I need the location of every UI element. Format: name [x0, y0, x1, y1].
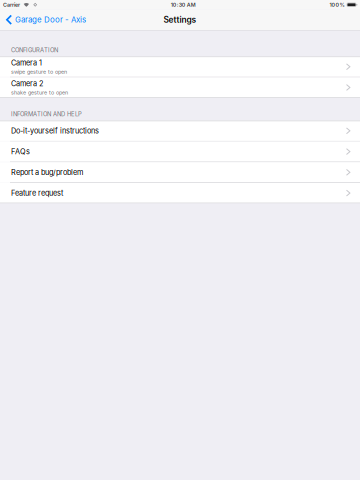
button[interactable]: Report a bug/problem: [0, 162, 360, 182]
button[interactable]: Feature request: [0, 183, 360, 203]
staticText: Report a bug/problem: [11, 168, 83, 177]
button[interactable]: FAQs: [0, 141, 360, 162]
staticText: Settings: [163, 15, 196, 25]
staticText: 100%: [329, 1, 344, 8]
staticText: swipe gesture to open: [11, 68, 67, 75]
staticText: Camera 2: [11, 79, 43, 88]
button[interactable]: Camera 2: [0, 77, 360, 97]
staticText: CONFIGURATION: [11, 46, 58, 54]
staticText: INFORMATION AND HELP: [11, 111, 82, 118]
staticText: Feature request: [11, 189, 63, 197]
staticText: shake gesture to open: [11, 89, 68, 96]
staticText: Camera 1: [11, 58, 42, 67]
button[interactable]: Garage Door - Axis: [0, 9, 91, 30]
staticText: FAQs: [11, 147, 30, 156]
button[interactable]: Camera 1: [0, 57, 360, 77]
staticText: 10:30 AM: [171, 1, 196, 8]
staticText: Garage Door - Axis: [15, 15, 86, 24]
button[interactable]: Do-it-yourself instructions: [0, 121, 360, 141]
staticText: Carrier: [3, 1, 20, 8]
staticText: Do-it-yourself instructions: [11, 126, 99, 135]
